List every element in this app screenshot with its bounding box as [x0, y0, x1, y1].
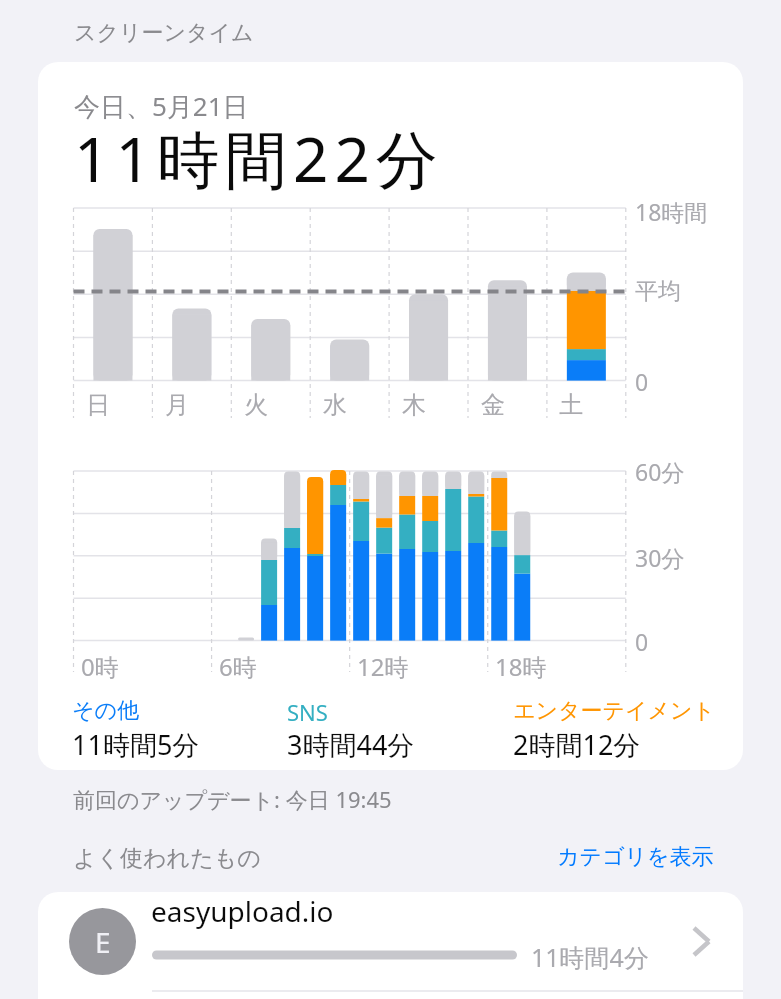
staticText: 18時間: [635, 196, 708, 227]
staticText: 12時: [357, 650, 409, 683]
staticText: 30分: [635, 542, 685, 573]
staticText: その他: [72, 697, 140, 725]
staticText: easyupload.io: [151, 892, 334, 930]
staticText: 11時間4分: [531, 940, 649, 974]
staticText: 月: [165, 390, 189, 420]
staticText: 金: [481, 390, 505, 420]
staticText: 土: [559, 390, 583, 420]
staticText: 0時: [81, 650, 119, 683]
staticText: 水: [323, 390, 347, 420]
staticText: 前回のアップデート: 今日 19:45: [73, 784, 392, 814]
staticText: よく使われたもの: [73, 844, 261, 873]
staticText: 火: [244, 390, 268, 420]
staticText: 11時間22分: [74, 116, 444, 201]
staticText: 今日、5月21日: [74, 88, 249, 124]
staticText: 6時: [219, 650, 257, 683]
button[interactable]: カテゴリを表示: [557, 843, 714, 871]
staticText: 60分: [635, 456, 685, 487]
staticText: スクリーンタイム: [74, 19, 254, 47]
staticText: E: [95, 923, 111, 961]
staticText: 2時間12分: [513, 726, 641, 763]
staticText: 木: [402, 390, 426, 420]
staticText: 日: [86, 390, 110, 420]
button[interactable]: [38, 892, 743, 999]
staticText: 0: [635, 366, 649, 397]
staticText: 0: [635, 626, 649, 657]
staticText: 平均: [635, 277, 681, 306]
staticText: 18時: [495, 650, 547, 683]
staticText: SNS: [287, 697, 328, 727]
staticText: 11時間5分: [72, 726, 200, 763]
staticText: 3時間44分: [287, 726, 415, 763]
staticText: カテゴリを表示: [557, 843, 714, 871]
staticText: エンターテイメント: [513, 697, 716, 725]
